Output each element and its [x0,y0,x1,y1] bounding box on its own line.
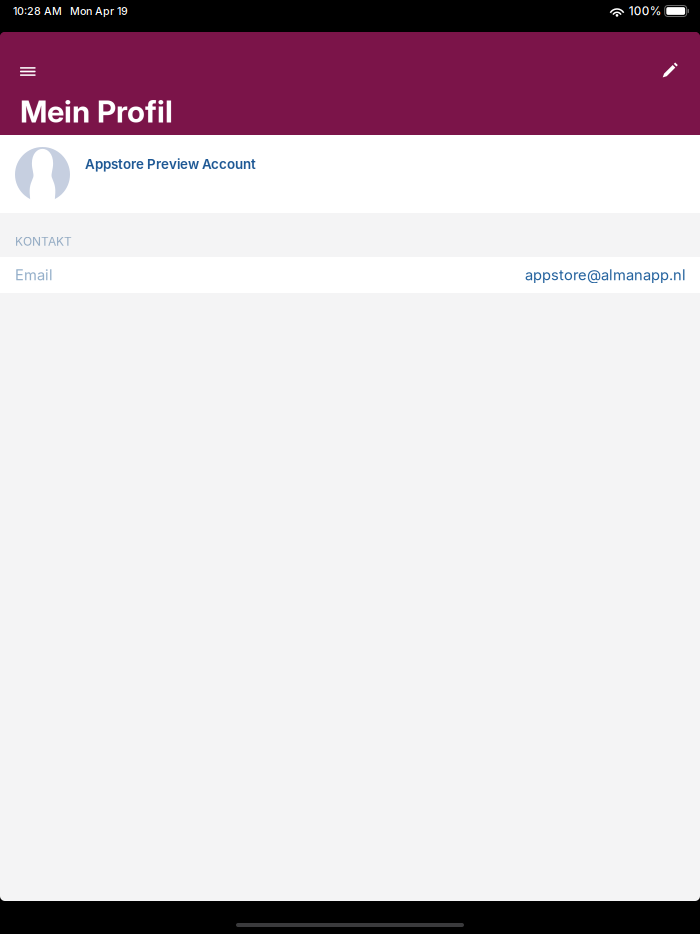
staticText: Mon Apr 19 [70,4,128,17]
staticText: 10:28 AM [13,4,62,17]
staticText: Mein Profil [20,93,173,130]
button[interactable]: Appstore Preview Account [0,135,700,213]
staticText: appstore@almanapp.nl [525,266,686,284]
staticText: KONTAKT [15,234,72,248]
button[interactable]: Email [0,257,700,293]
button[interactable]: Menu [0,62,50,81]
staticText: Appstore Preview Account [85,156,256,172]
button[interactable]: Edit [648,62,700,81]
staticText: Email [15,266,53,284]
staticText: 100% [629,4,662,18]
